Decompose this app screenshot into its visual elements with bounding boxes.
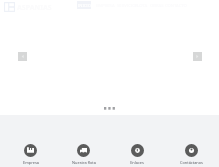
staticText: Empresa bbox=[23, 160, 39, 165]
button[interactable]: Contáctanos bbox=[164, 115, 218, 165]
button[interactable]: Home bbox=[4, 2, 15, 12]
button[interactable]: Nuestra flota bbox=[57, 115, 110, 165]
button[interactable]: Enlaces bbox=[110, 115, 164, 165]
staticText: Nuestra flota bbox=[72, 160, 96, 165]
button[interactable]: Previous slide bbox=[18, 52, 27, 61]
button[interactable]: Empresa bbox=[4, 115, 57, 165]
staticText: Contáctanos bbox=[180, 160, 203, 165]
button[interactable]: INICIO bbox=[77, 1, 91, 9]
button[interactable]: Slide indicators bbox=[104, 107, 115, 110]
staticText: Enlaces bbox=[130, 160, 144, 165]
staticText: INICIO bbox=[78, 3, 91, 8]
button[interactable]: Next slide bbox=[193, 52, 202, 61]
